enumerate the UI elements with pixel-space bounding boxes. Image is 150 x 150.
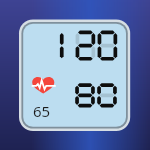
button[interactable]: Blood pressure 120 over 80, pulse 65 <box>0 0 150 150</box>
staticText: 65 <box>33 101 51 121</box>
